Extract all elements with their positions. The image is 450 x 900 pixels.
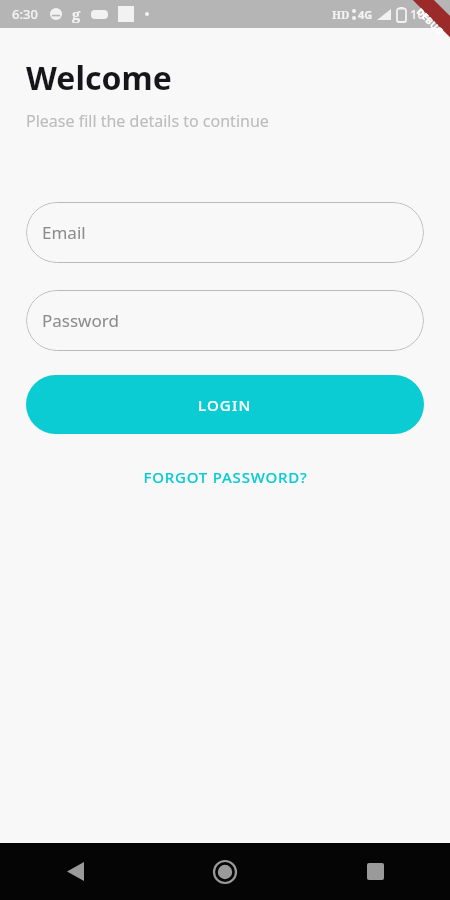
staticText: FORGOT PASSWORD? [143,467,308,487]
button[interactable]: Email [26,202,424,263]
button[interactable]: Back [0,843,150,900]
button[interactable]: Home [150,843,300,900]
staticText: Welcome [26,56,172,100]
button[interactable]: LOGIN [26,375,424,434]
staticText: 6:30 [12,5,38,23]
staticText: HD [332,7,350,22]
staticText: Email [42,221,86,244]
staticText: Password [42,309,119,332]
button[interactable]: Recent apps [300,843,450,900]
staticText: 100% [410,5,444,23]
button[interactable]: FORGOT PASSWORD? [135,463,316,491]
staticText: g [72,4,81,24]
button[interactable]: Password [26,290,424,351]
staticText: DEBUG [415,5,446,37]
staticText: Please fill the details to continue [26,110,269,132]
staticText: 4G [358,7,373,22]
staticText: LOGIN [198,395,252,415]
